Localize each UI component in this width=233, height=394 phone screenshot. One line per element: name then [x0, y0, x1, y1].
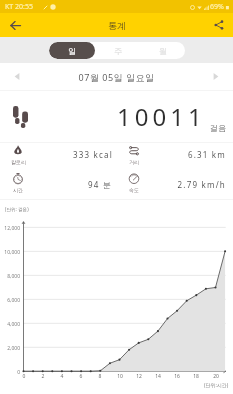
- staticText: 8: [95, 373, 105, 380]
- staticText: 0: [0, 369, 20, 376]
- staticText: 10: [115, 373, 125, 380]
- staticText: (단위:시간): [204, 382, 229, 389]
- staticText: 18: [191, 373, 201, 380]
- staticText: 8,000: [0, 273, 20, 280]
- staticText: 속도: [129, 187, 139, 193]
- staticText: 시간: [13, 187, 23, 193]
- staticText: 0: [19, 373, 29, 380]
- staticText: 주: [114, 46, 122, 56]
- button[interactable]: Previous day: [0, 63, 34, 90]
- staticText: 6.31 km: [116, 149, 226, 160]
- button[interactable]: 일: [49, 42, 95, 59]
- staticText: 10,000: [0, 249, 20, 256]
- staticText: 10011: [117, 100, 206, 133]
- staticText: 통계: [108, 20, 126, 31]
- button[interactable]: 주: [95, 42, 140, 59]
- staticText: 월: [159, 46, 167, 56]
- button[interactable]: Back: [0, 13, 30, 37]
- staticText: 칼로리: [11, 159, 26, 165]
- staticText: 일: [68, 46, 76, 56]
- staticText: 12,000: [0, 225, 20, 232]
- staticText: 14: [153, 373, 163, 380]
- staticText: 4,000: [0, 321, 20, 328]
- staticText: 333 kcal: [0, 149, 113, 160]
- staticText: 거리: [129, 159, 139, 165]
- staticText: 2.79 km/h: [116, 179, 226, 190]
- staticText: 12: [134, 373, 144, 380]
- staticText: 걸음: [210, 123, 226, 133]
- staticText: 6,000: [0, 297, 20, 304]
- staticText: 20: [211, 373, 221, 380]
- button[interactable]: 월: [140, 42, 185, 59]
- staticText: KT 20:55: [5, 2, 33, 12]
- staticText: 16: [172, 373, 182, 380]
- staticText: (단위: 걸음): [5, 206, 29, 212]
- button[interactable]: Next day: [199, 63, 233, 90]
- staticText: 6: [76, 373, 86, 380]
- staticText: 69%: [210, 2, 224, 12]
- staticText: 94 분: [0, 179, 112, 190]
- staticText: 4: [57, 373, 67, 380]
- staticText: 2,000: [0, 345, 20, 352]
- staticText: 2: [38, 373, 48, 380]
- button[interactable]: Share: [205, 13, 233, 37]
- staticText: 07월 05일 일요일: [34, 71, 199, 83]
